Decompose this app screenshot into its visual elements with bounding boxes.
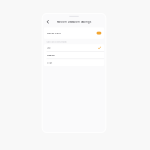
staticText: Medium [47,54,55,57]
button[interactable]: High [44,59,104,66]
button[interactable]: Motion Alerts [44,27,104,39]
staticText: Select detection sensitivity [46,41,67,43]
button[interactable]: Low [44,44,104,51]
staticText: Motion Alerts [47,32,61,34]
button[interactable]: Back [45,19,51,25]
button[interactable]: Medium [44,52,104,59]
staticText: Low [47,46,51,49]
staticText: Motion Detection Settings [57,20,91,24]
staticText: High [47,61,52,64]
